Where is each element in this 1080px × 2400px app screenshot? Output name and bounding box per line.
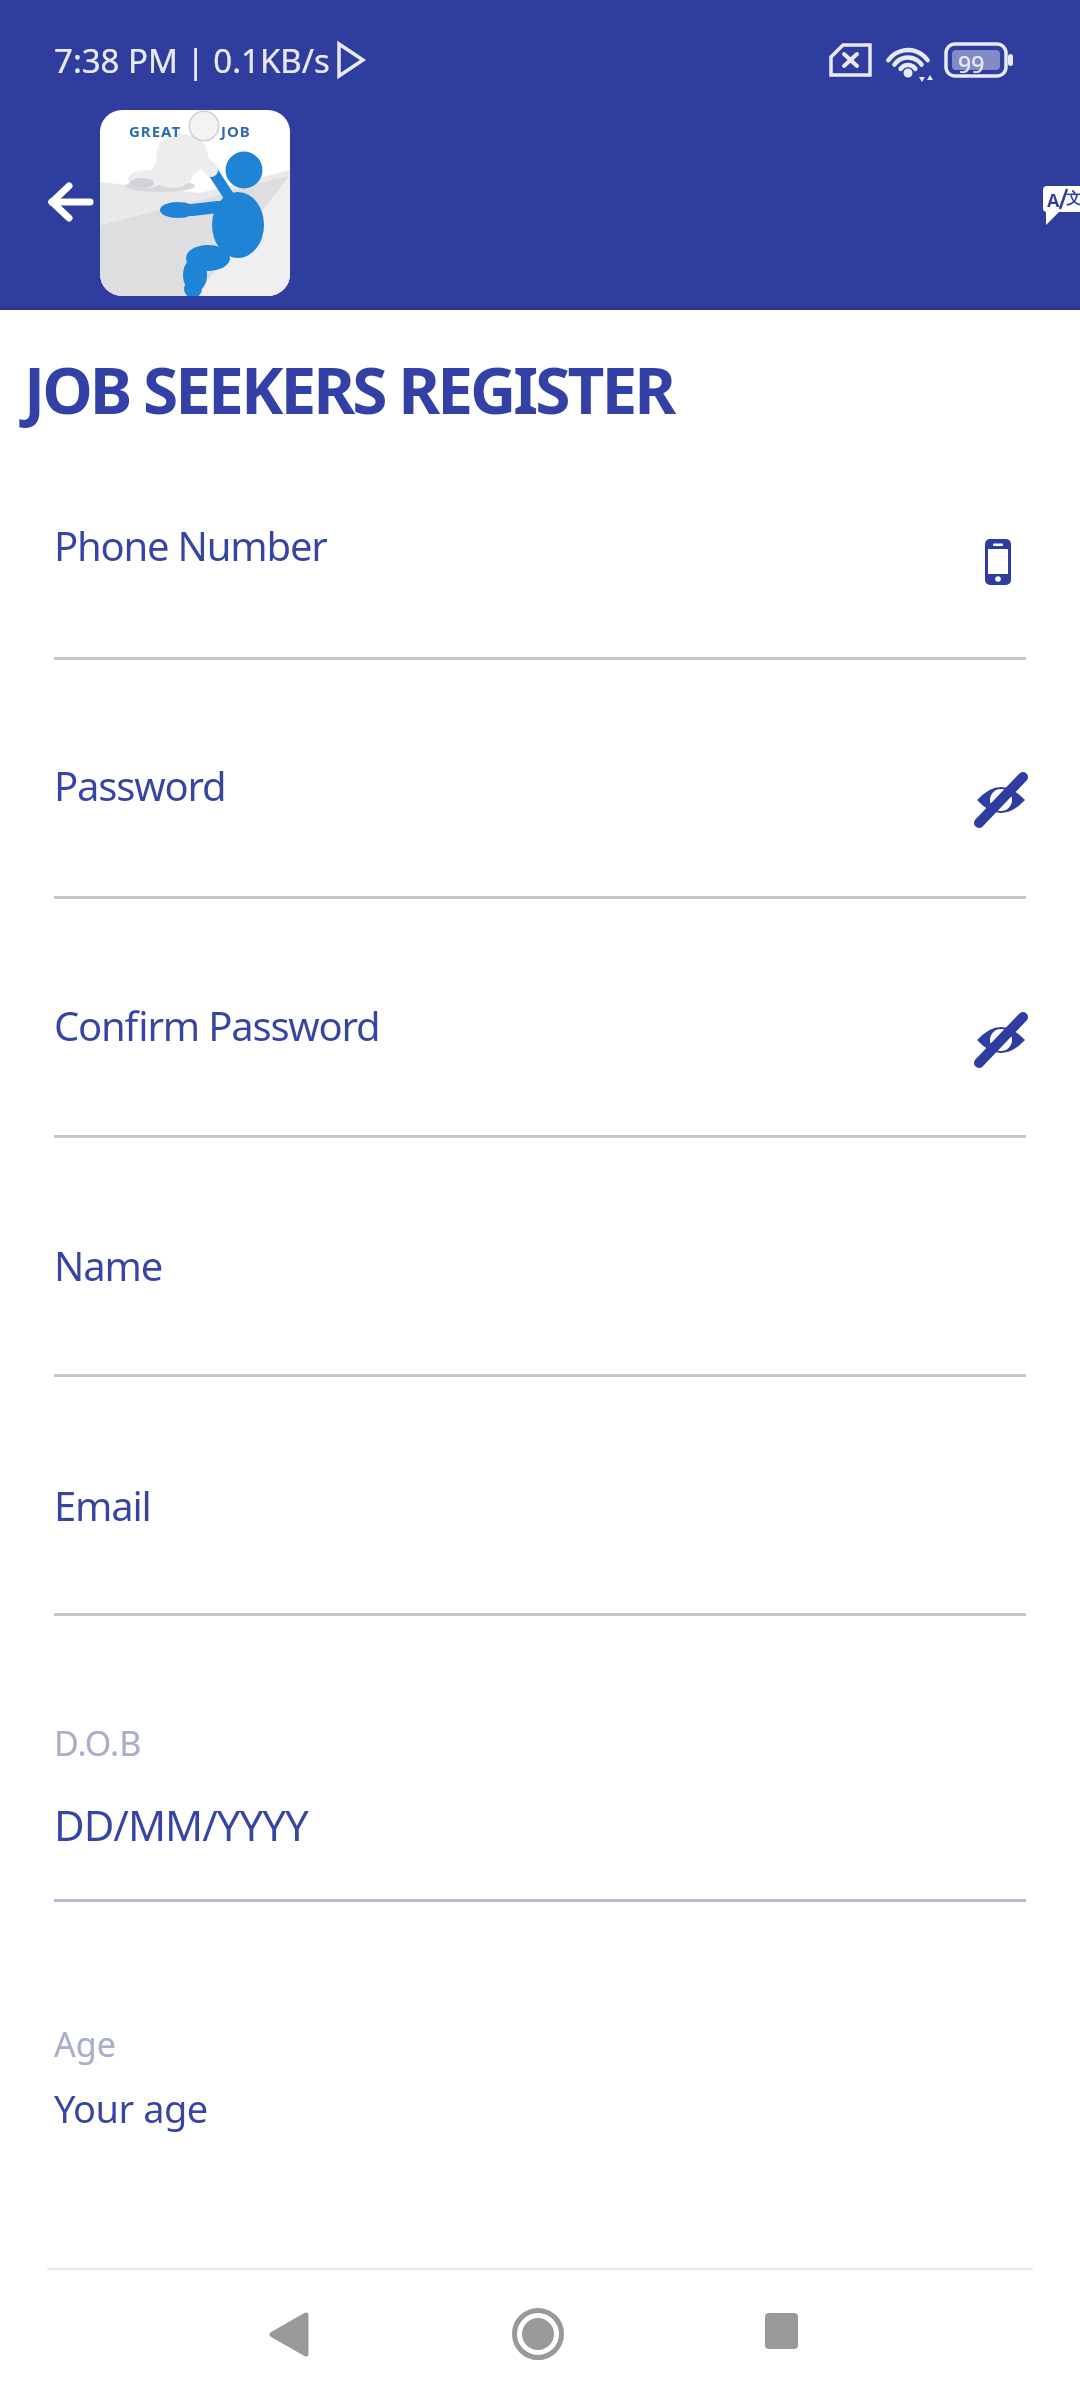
- staticText: Password: [54, 758, 226, 812]
- staticText: 文: [1066, 189, 1080, 209]
- button[interactable]: [258, 2303, 320, 2365]
- staticText: GREAT: [129, 121, 182, 141]
- staticText: Phone Number: [54, 518, 327, 572]
- button[interactable]: [976, 1017, 1026, 1067]
- button[interactable]: A: [1040, 183, 1080, 227]
- staticText: Email: [54, 1478, 151, 1532]
- button[interactable]: Email: [40, 1450, 1040, 1616]
- button[interactable]: [38, 170, 104, 234]
- button[interactable]: Password: [40, 730, 1040, 899]
- button[interactable]: [976, 777, 1026, 827]
- staticText: Age: [54, 2021, 116, 2067]
- staticText: Confirm Password: [54, 998, 380, 1052]
- button[interactable]: Age: [40, 2004, 1040, 2184]
- staticText: JOB: [221, 121, 251, 141]
- staticText: 99: [958, 48, 985, 79]
- button[interactable]: Phone Number: [40, 490, 1040, 660]
- staticText: Name: [54, 1238, 162, 1292]
- staticText: A: [1047, 188, 1060, 213]
- button[interactable]: Name: [40, 1210, 1040, 1377]
- button[interactable]: GREAT: [100, 110, 290, 296]
- button[interactable]: [507, 2303, 569, 2365]
- staticText: JOB SEEKERS REGISTER: [24, 346, 674, 433]
- staticText: DD/MM/YYYY: [54, 1796, 308, 1853]
- staticText: 7:38 PM | 0.1KB/s: [54, 38, 330, 83]
- button[interactable]: Confirm Password: [40, 970, 1040, 1138]
- staticText: D.O.B: [54, 1720, 142, 1766]
- button[interactable]: D.O.B: [40, 1700, 1040, 1910]
- staticText: Your age: [54, 2082, 208, 2134]
- button[interactable]: [751, 2303, 813, 2365]
